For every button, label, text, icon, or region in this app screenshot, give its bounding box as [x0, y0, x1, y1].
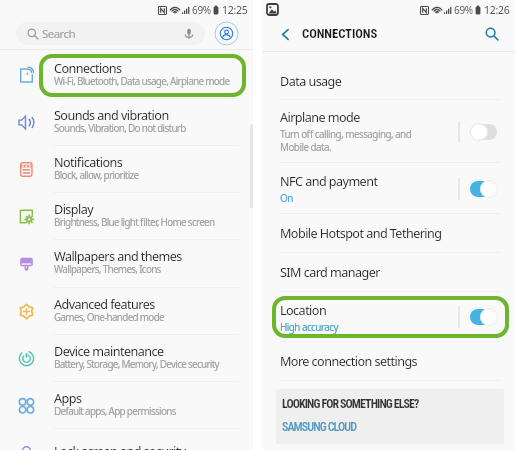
staticText: 69%	[454, 3, 473, 17]
staticText: SIM card manager	[280, 264, 380, 281]
button[interactable]: Notifications	[0, 146, 253, 193]
button[interactable]: Mobile Hotspot and Tethering	[262, 214, 515, 253]
button[interactable]: Lock screen and security	[0, 429, 253, 450]
button[interactable]: Sounds and vibration	[0, 99, 253, 146]
staticText: Advanced features	[54, 296, 155, 313]
button[interactable]: Samsung account	[214, 21, 239, 46]
staticText: 12:26	[484, 3, 510, 17]
button[interactable]: Wallpapers and themes	[0, 240, 253, 287]
staticText: Notifications	[54, 154, 123, 171]
staticText: On	[280, 191, 293, 204]
staticText: 69%	[192, 3, 211, 17]
staticText: Brightness, Blue light filter, Home scre…	[54, 215, 215, 228]
staticText: Wallpapers, Themes, Icons	[54, 262, 161, 275]
button[interactable]: Location	[262, 292, 515, 342]
button[interactable]: Navigate up	[272, 21, 298, 47]
button[interactable]: Airplane mode	[262, 100, 515, 163]
button[interactable]: Apps	[0, 382, 253, 429]
button[interactable]: Display	[0, 193, 253, 240]
staticText: Location	[280, 302, 327, 319]
button[interactable]: Search	[16, 22, 205, 45]
staticText: Sounds and vibration	[54, 107, 169, 124]
staticText: Device maintenance	[54, 343, 164, 360]
staticText: Data usage	[280, 73, 342, 90]
staticText: Display	[54, 201, 94, 218]
button[interactable]: Connections	[0, 52, 253, 99]
staticText: Wi-Fi, Bluetooth, Data usage, Airplane m…	[54, 74, 230, 87]
button[interactable]: Advanced features	[0, 288, 253, 335]
button[interactable]: Search	[479, 21, 505, 47]
staticText: Search	[42, 26, 76, 42]
staticText: Battery, Storage, Memory, Device securit…	[54, 357, 219, 370]
button[interactable]: Data usage	[262, 62, 515, 100]
staticText: More connection settings	[280, 353, 418, 370]
button[interactable]: NFC and payment	[262, 163, 515, 214]
staticText: Apps	[54, 390, 82, 407]
staticText: Block, allow, prioritize	[54, 168, 139, 181]
staticText: LOOKING FOR SOMETHING ELSE?	[282, 397, 419, 411]
button[interactable]: Device maintenance	[0, 335, 253, 382]
staticText: NFC and payment	[280, 173, 378, 190]
staticText: Default apps, App permissions	[54, 404, 176, 417]
staticText: Games, One-handed mode	[54, 310, 164, 323]
staticText: Lock screen and security	[54, 443, 186, 450]
staticText: CONNECTIONS	[302, 26, 378, 41]
staticText: SAMSUNG CLOUD	[282, 420, 357, 434]
button[interactable]: NFC and payment switch	[470, 179, 497, 199]
staticText: Mobile Hotspot and Tethering	[280, 225, 442, 242]
staticText: Connections	[54, 60, 122, 77]
button[interactable]: SIM card manager	[262, 253, 515, 292]
staticText: 12:25	[222, 3, 248, 17]
staticText: Sounds, Vibration, Do not disturb	[54, 121, 186, 134]
staticText: High accuracy	[280, 320, 338, 333]
button[interactable]: LOOKING FOR SOMETHING ELSE?	[276, 389, 504, 444]
button[interactable]: More connection settings	[262, 342, 515, 381]
staticText: Airplane mode	[280, 109, 360, 126]
staticText: Wallpapers and themes	[54, 248, 182, 265]
button[interactable]: Airplane mode switch	[470, 122, 497, 142]
button[interactable]: Location switch	[470, 307, 497, 327]
staticText: Turn off calling, messaging, and Mobile …	[280, 127, 412, 153]
